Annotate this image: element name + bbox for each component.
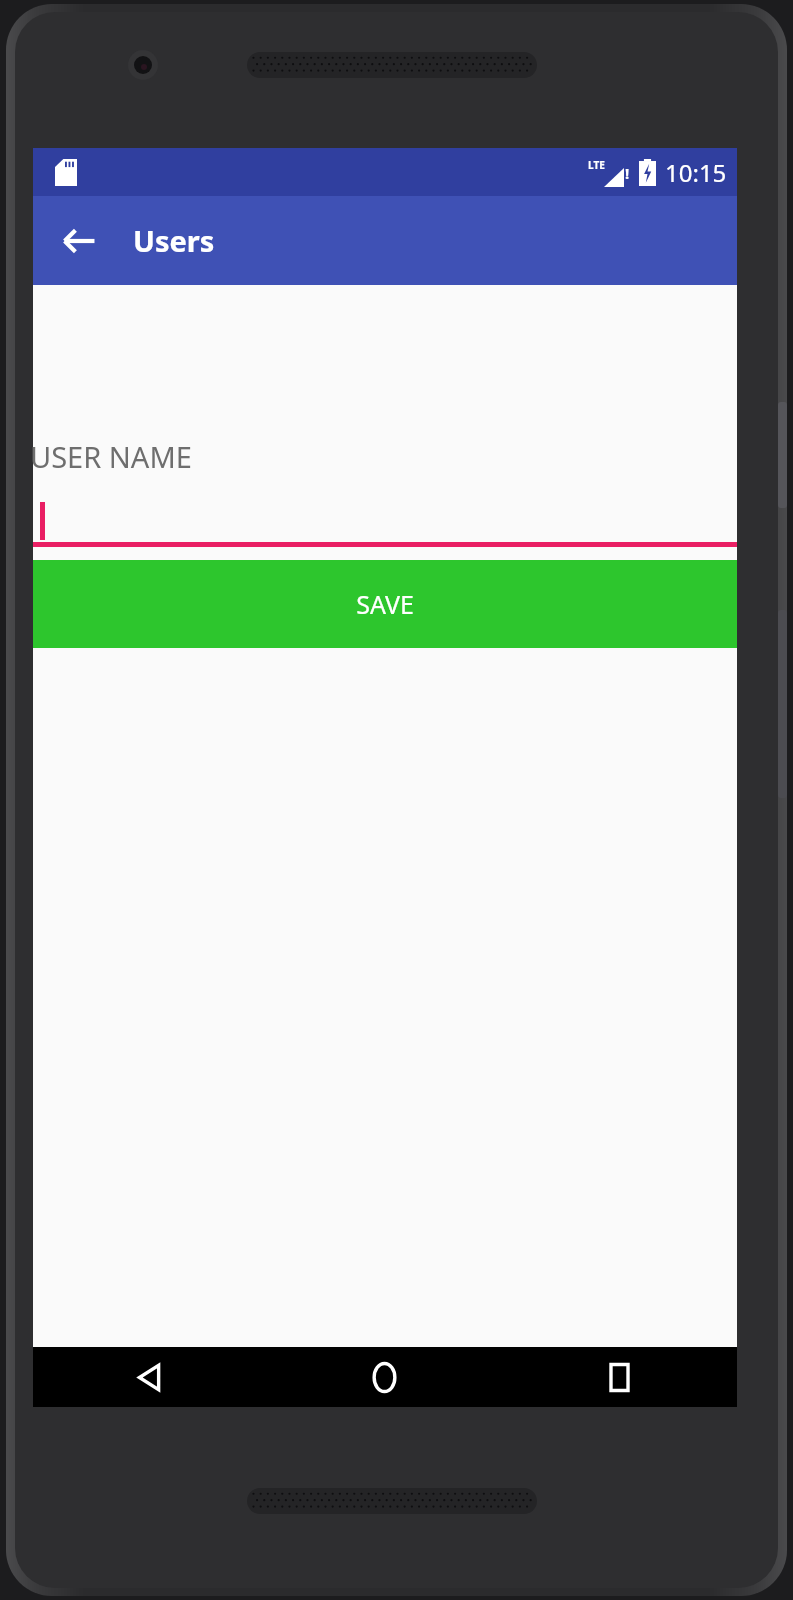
button[interactable]: Home bbox=[267, 1347, 502, 1407]
button[interactable]: Navigate up bbox=[47, 209, 111, 273]
staticText: SAVE bbox=[356, 587, 414, 621]
staticText: LTE bbox=[588, 158, 605, 172]
button[interactable]: Recent apps bbox=[502, 1347, 737, 1407]
button[interactable]: USER NAME bbox=[33, 437, 737, 547]
staticText: ! bbox=[625, 163, 630, 183]
button[interactable]: SAVE bbox=[33, 560, 737, 648]
staticText: Users bbox=[133, 221, 215, 260]
staticText: USER NAME bbox=[30, 437, 192, 476]
staticText: 10:15 bbox=[665, 156, 727, 189]
button[interactable]: Back bbox=[33, 1347, 267, 1407]
